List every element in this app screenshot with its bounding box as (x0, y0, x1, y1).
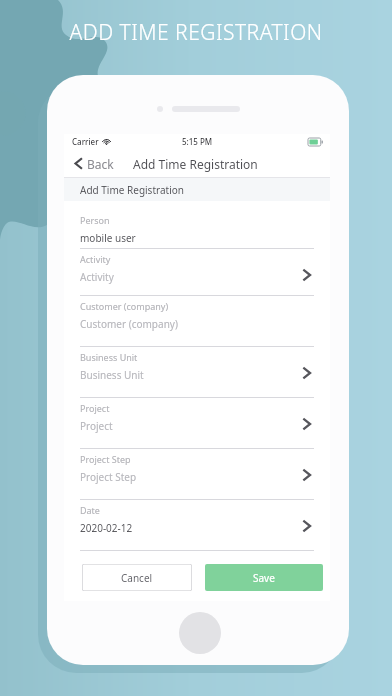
staticText: Person (80, 214, 110, 226)
staticText: Business Unit (80, 351, 138, 363)
staticText: 5:15 PM (182, 136, 213, 147)
other: Choose Project Step (300, 468, 314, 482)
button[interactable]: Activity (64, 249, 330, 296)
staticText: Carrier (72, 136, 99, 147)
other: Choose Project (300, 417, 314, 431)
button[interactable]: Date (64, 500, 330, 551)
button[interactable]: Back (64, 149, 122, 178)
button[interactable]: Home (179, 612, 221, 654)
button[interactable]: Customer (company) (64, 296, 330, 347)
staticText: Activity (80, 253, 111, 265)
button[interactable]: Person (64, 210, 330, 249)
staticText: Project Step (80, 453, 131, 465)
other: Choose Business Unit (300, 366, 314, 380)
staticText: Project (80, 419, 113, 433)
staticText: Add Time Registration (80, 183, 184, 197)
other: Choose Activity (300, 268, 314, 282)
staticText: 2020-02-12 (80, 521, 133, 535)
staticText: Customer (company) (80, 300, 169, 312)
button[interactable]: Business Unit (64, 347, 330, 398)
button[interactable]: Save (205, 564, 323, 591)
staticText: Date (80, 504, 100, 516)
staticText: ADD TIME REGISTRATION (0, 18, 392, 47)
staticText: Project Step (80, 470, 137, 484)
staticText: Cancel (121, 571, 153, 585)
button[interactable]: Project (64, 398, 330, 449)
button[interactable]: Project Step (64, 449, 330, 500)
staticText: Business Unit (80, 368, 144, 382)
other: Choose Date (300, 519, 314, 533)
staticText: Activity (80, 270, 114, 284)
staticText: Customer (company) (80, 317, 178, 331)
staticText: Save (253, 571, 275, 585)
staticText: Back (87, 156, 114, 172)
button[interactable]: Cancel (82, 564, 192, 591)
staticText: mobile user (80, 231, 136, 245)
staticText: Project (80, 402, 110, 414)
staticText: Add Time Registration (133, 156, 258, 172)
